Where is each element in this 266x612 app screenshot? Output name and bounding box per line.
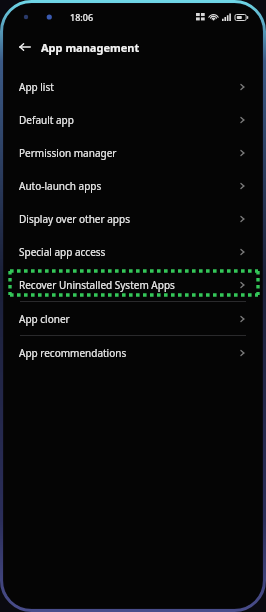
staticText: Display over other apps — [19, 212, 238, 226]
staticText: Auto-launch apps — [19, 179, 238, 193]
button[interactable]: Default app — [4, 103, 262, 136]
button[interactable]: Recover Uninstalled System Apps — [4, 268, 262, 301]
button[interactable]: Display over other apps — [4, 202, 262, 235]
staticText: Default app — [19, 113, 238, 127]
button[interactable]: Special app access — [4, 235, 262, 268]
staticText: App management — [41, 40, 140, 55]
button[interactable]: App recommendations — [4, 336, 262, 369]
button[interactable]: App list — [4, 70, 262, 103]
button[interactable]: Auto-launch apps — [4, 169, 262, 202]
staticText: App list — [19, 80, 238, 94]
staticText: Special app access — [19, 245, 238, 259]
staticText: 18:06 — [70, 11, 94, 23]
button[interactable]: Back — [12, 34, 38, 60]
staticText: Permission manager — [19, 146, 238, 160]
button[interactable]: App cloner — [4, 302, 262, 335]
staticText: App recommendations — [19, 346, 238, 360]
staticText: App cloner — [19, 312, 238, 326]
staticText: Recover Uninstalled System Apps — [19, 278, 238, 292]
button[interactable]: Permission manager — [4, 136, 262, 169]
